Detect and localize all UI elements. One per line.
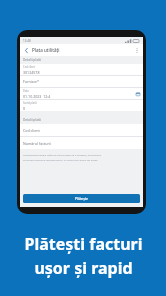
staticText: Furnizor* [23, 79, 40, 84]
staticText: Numărul facturii [23, 141, 51, 146]
staticText: ușor și rapid [34, 257, 133, 279]
button[interactable]: Sumă plată [20, 100, 143, 111]
staticText: Cod client [23, 65, 36, 69]
staticText: Data [23, 89, 29, 93]
staticText: 30124578 [23, 70, 40, 75]
button[interactable]: Cod client [20, 64, 143, 75]
staticText: Plătești facturi [24, 233, 143, 255]
staticText: 01.10.2023 12:4 [23, 94, 51, 99]
staticText: Sumă plată [23, 101, 37, 105]
staticText: Cod client [23, 128, 40, 133]
button[interactable]: Cod client [20, 124, 143, 136]
staticText: 12:48 [23, 39, 31, 43]
staticText: Plătește [75, 196, 89, 201]
staticText: Detalii plată [23, 118, 41, 122]
button[interactable]: Plătește [23, 194, 140, 203]
button[interactable]: More options [133, 46, 141, 54]
button[interactable]: Numărul facturii [20, 137, 143, 149]
button[interactable]: Back [22, 46, 30, 54]
staticText: Plata utilități [32, 47, 60, 53]
staticText: 0 [23, 106, 26, 111]
button[interactable]: Data [20, 88, 143, 99]
staticText: Completează datele plăţii pe care doreșt… [23, 153, 102, 156]
staticText: va verifica automat identificatorul. În … [23, 158, 98, 161]
button[interactable]: Furnizor* [20, 76, 143, 87]
staticText: Detalii plată [23, 58, 41, 62]
